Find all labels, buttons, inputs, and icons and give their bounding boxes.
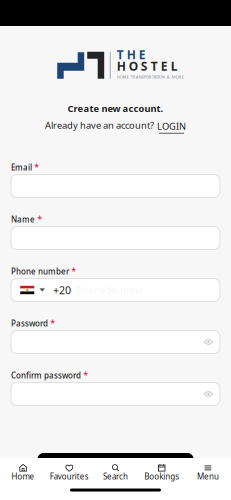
staticText: Home (12, 471, 35, 482)
button[interactable] (11, 382, 220, 405)
staticText: LOGIN (157, 120, 186, 132)
button[interactable]: Favourites (46, 464, 92, 480)
button[interactable]: +20 (11, 278, 220, 301)
staticText: * (50, 318, 54, 329)
button[interactable] (11, 226, 220, 249)
button[interactable] (11, 330, 220, 353)
button[interactable] (11, 174, 220, 197)
staticText: * (83, 370, 87, 381)
button[interactable]: Home (0, 464, 46, 480)
staticText: +20 (53, 283, 71, 297)
staticText: * (37, 214, 41, 225)
staticText: Phone Number (76, 284, 144, 296)
staticText: Bookings (144, 471, 179, 482)
staticText: H O S T E L (117, 58, 178, 74)
staticText: * (71, 266, 75, 277)
staticText: Menu (197, 471, 219, 482)
staticText: T H E (117, 47, 146, 62)
button[interactable]: Search (92, 464, 139, 480)
staticText: Already have an account? (45, 119, 154, 131)
staticText: Password (11, 318, 48, 329)
staticText: Phone number (11, 266, 69, 277)
button[interactable]: LOGIN (157, 120, 186, 130)
button[interactable]: Bookings (139, 464, 185, 480)
staticText: Email (11, 162, 32, 173)
staticText: Confirm password (11, 370, 81, 381)
staticText: HOME TRANSPORTATION & MORE (117, 74, 184, 79)
staticText: Search (103, 471, 128, 482)
staticText: Name (11, 214, 35, 225)
staticText: Favourites (50, 471, 89, 482)
button[interactable]: Menu (185, 464, 231, 480)
staticText: * (34, 162, 38, 173)
staticText: Create new account. (67, 102, 163, 115)
